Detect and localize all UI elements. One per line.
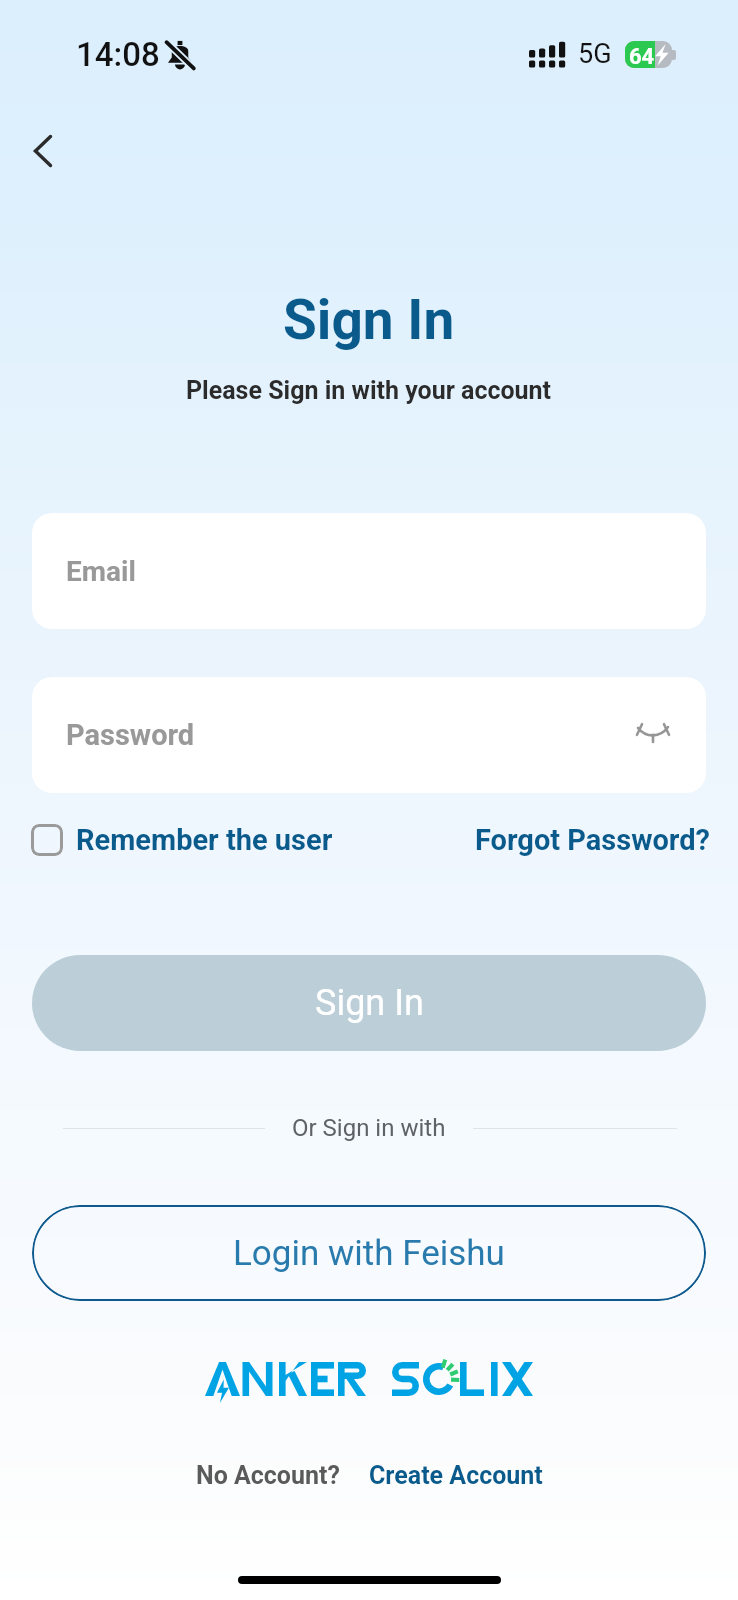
staticText: 14:08 — [76, 35, 160, 74]
button[interactable]: Password — [32, 677, 706, 793]
staticText: Sign In — [283, 288, 455, 352]
button[interactable]: Sign In — [32, 955, 706, 1051]
staticText: 64 — [629, 44, 655, 70]
button[interactable]: Show password — [625, 705, 681, 761]
staticText: Sign In — [315, 982, 424, 1024]
staticText: No Account? — [196, 1461, 340, 1490]
staticText: Or Sign in with — [292, 1114, 446, 1142]
button[interactable]: Create Account — [369, 1461, 543, 1490]
staticText: Remember the user — [76, 823, 333, 857]
staticText: Email — [66, 555, 136, 588]
staticText: Please Sign in with your account — [186, 376, 552, 405]
staticText: 5G — [578, 38, 612, 70]
button[interactable]: Remember the user — [31, 823, 333, 857]
button[interactable]: Back — [8, 121, 68, 181]
button[interactable]: Email — [32, 513, 706, 629]
staticText: Login with Feishu — [233, 1233, 505, 1274]
button[interactable]: Login with Feishu — [32, 1205, 706, 1301]
staticText: Password — [66, 718, 195, 752]
button[interactable]: Forgot Password? — [475, 823, 710, 857]
